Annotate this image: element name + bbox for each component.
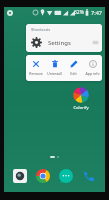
- staticText: 7:47: [91, 9, 102, 16]
- other: App info: [89, 60, 97, 68]
- button[interactable]: Colorify: [68, 86, 94, 112]
- staticText: Remove: [29, 71, 43, 76]
- button[interactable]: Phone: [79, 166, 99, 186]
- button[interactable]: Edit: [64, 59, 83, 77]
- button[interactable]: Uninstall: [45, 59, 64, 77]
- staticText: Shortcuts: [31, 27, 51, 33]
- button[interactable]: Chrome: [33, 166, 53, 186]
- other: Uninstall: [51, 60, 59, 68]
- staticText: App info: [85, 71, 100, 76]
- button[interactable]: Camera: [10, 166, 30, 186]
- other: Edit: [70, 60, 78, 68]
- staticText: 62%: [74, 9, 84, 16]
- button[interactable]: App info: [83, 59, 102, 77]
- button[interactable]: Messages: [56, 166, 76, 186]
- other: Remove: [32, 60, 40, 68]
- staticText: Uninstall: [47, 71, 62, 76]
- staticText: Edit: [70, 71, 77, 76]
- button[interactable]: Shortcuts: [26, 24, 102, 52]
- staticText: Colorify: [73, 105, 89, 111]
- button[interactable]: Remove: [26, 59, 45, 77]
- staticText: Settings: [48, 39, 71, 47]
